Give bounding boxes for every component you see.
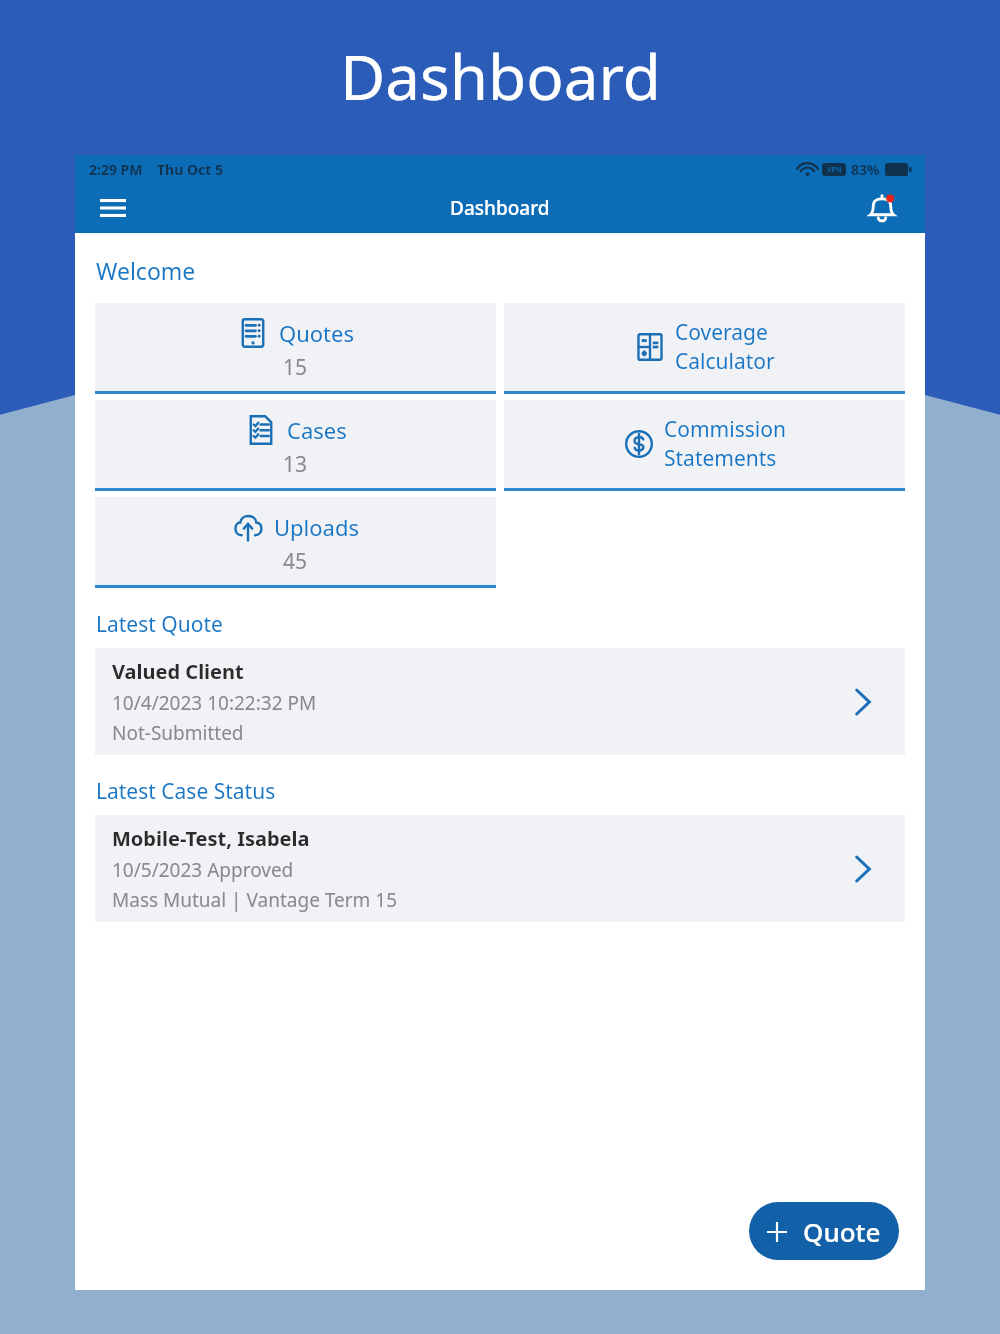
staticText: 10/5/2023 Approved: [112, 857, 294, 883]
staticText: Thu Oct 5: [157, 160, 223, 179]
staticText: Quotes: [279, 318, 354, 348]
staticText: Quote: [803, 1214, 881, 1249]
staticText: Calculator: [675, 347, 775, 376]
button[interactable]: Cases: [95, 400, 496, 491]
button[interactable]: Commission: [504, 400, 905, 491]
staticText: Cases: [287, 415, 347, 445]
staticText: Latest Quote: [96, 610, 223, 639]
button[interactable]: Coverage: [504, 303, 905, 394]
staticText: 15: [283, 353, 308, 382]
button[interactable]: Mobile-Test, Isabela: [95, 815, 905, 922]
staticText: Uploads: [274, 512, 360, 542]
button[interactable]: Valued Client: [95, 648, 905, 755]
staticText: Dashboard: [450, 195, 550, 221]
button[interactable]: Quote: [749, 1202, 899, 1260]
staticText: 13: [283, 450, 308, 479]
staticText: Statements: [664, 444, 777, 473]
button[interactable]: Uploads: [95, 497, 496, 588]
button[interactable]: Notifications: [859, 185, 905, 231]
staticText: Welcome: [96, 255, 196, 286]
staticText: Commission: [664, 415, 786, 444]
staticText: 45: [283, 547, 308, 576]
button[interactable]: Quotes: [95, 303, 496, 394]
staticText: Mobile-Test, Isabela: [112, 825, 310, 852]
staticText: Valued Client: [112, 658, 244, 685]
staticText: Coverage: [675, 318, 768, 347]
staticText: 83%: [851, 160, 880, 179]
staticText: Mass Mutual | Vantage Term 15: [112, 887, 398, 913]
staticText: Not-Submitted: [112, 720, 244, 746]
staticText: Dashboard: [340, 34, 661, 118]
staticText: 2:29 PM: [89, 160, 143, 179]
button[interactable]: Menu: [91, 186, 135, 230]
staticText: VPN: [827, 165, 842, 175]
staticText: Latest Case Status: [96, 777, 276, 806]
staticText: 10/4/2023 10:22:32 PM: [112, 690, 317, 716]
